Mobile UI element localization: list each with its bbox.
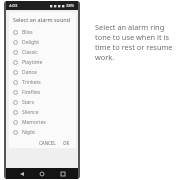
staticText: Dance xyxy=(22,69,37,76)
button[interactable]: Recents xyxy=(58,169,68,179)
button[interactable]: Bliss xyxy=(13,27,72,37)
button[interactable]: Trinkets xyxy=(13,77,72,87)
staticText: Night xyxy=(22,129,36,136)
staticText: OK xyxy=(63,140,70,146)
staticText: 4:03 xyxy=(9,3,18,9)
staticText: Stars xyxy=(22,99,34,106)
button[interactable]: Back xyxy=(17,169,27,179)
button[interactable]: Fireflies xyxy=(13,87,72,97)
button[interactable]: Silence xyxy=(13,107,72,117)
button[interactable]: Memories xyxy=(13,117,72,127)
button[interactable]: Delight xyxy=(13,37,72,47)
staticText: Bliss xyxy=(22,29,33,36)
staticText: Trinkets xyxy=(22,79,41,86)
staticText: Fireflies xyxy=(22,89,41,96)
button[interactable]: Night xyxy=(13,127,72,137)
staticText: Classic xyxy=(22,49,38,56)
staticText: Select an alarm sound xyxy=(13,16,71,23)
button[interactable]: Home xyxy=(37,169,47,179)
button[interactable]: Playtime xyxy=(13,57,72,67)
staticText: Delight xyxy=(22,39,40,46)
button[interactable]: Stars xyxy=(13,97,72,107)
staticText: Select an alarm ring tone to use when it… xyxy=(95,22,175,62)
staticText: CANCEL xyxy=(39,140,56,146)
staticText: Memories xyxy=(22,119,46,126)
staticText: Silence xyxy=(22,109,39,116)
button[interactable]: CANCEL xyxy=(37,139,58,147)
button[interactable]: Classic xyxy=(13,47,72,57)
staticText: 38% xyxy=(66,3,75,9)
button[interactable]: OK xyxy=(61,139,72,147)
button[interactable]: Dance xyxy=(13,67,72,77)
staticText: Playtime xyxy=(22,59,43,66)
